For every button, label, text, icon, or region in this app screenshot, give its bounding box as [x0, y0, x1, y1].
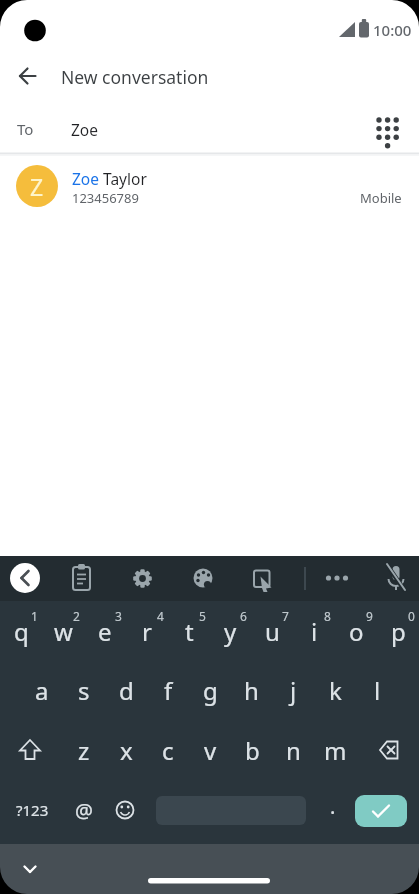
staticText: q	[14, 615, 29, 648]
staticText: m	[324, 734, 347, 767]
staticText: u	[265, 615, 280, 648]
staticText: l	[374, 674, 381, 707]
staticText: ?123	[16, 800, 49, 820]
staticText: 9	[366, 608, 373, 622]
staticText: y	[224, 615, 237, 648]
button[interactable]: j	[274, 673, 312, 707]
staticText: b	[245, 734, 260, 767]
staticText: p	[391, 615, 406, 648]
button[interactable]	[12, 61, 42, 91]
staticText: .	[330, 793, 336, 820]
staticText: f	[164, 674, 173, 707]
staticText: 123456789	[72, 189, 139, 207]
button[interactable]: z	[65, 733, 103, 767]
staticText: h	[244, 674, 259, 707]
button[interactable]: l	[358, 673, 396, 707]
button[interactable]	[156, 796, 306, 826]
staticText: 2	[73, 608, 80, 622]
staticText: 8	[324, 608, 331, 622]
button[interactable]	[66, 563, 96, 593]
button[interactable]	[14, 854, 46, 886]
button[interactable]: y	[211, 614, 249, 648]
button[interactable]: x	[107, 733, 145, 767]
staticText: d	[119, 674, 134, 707]
staticText: r	[142, 615, 152, 648]
staticText: c	[162, 734, 174, 767]
button[interactable]	[247, 563, 277, 593]
button[interactable]: a	[23, 673, 61, 707]
staticText: k	[329, 674, 342, 707]
button[interactable]: q	[2, 614, 40, 648]
staticText: 7	[282, 608, 289, 622]
button[interactable]	[322, 563, 352, 593]
button[interactable]: w	[44, 614, 82, 648]
button[interactable]: @	[69, 793, 99, 827]
staticText: 3	[115, 608, 122, 622]
staticText: 5	[199, 608, 206, 622]
staticText: 10:00	[373, 20, 412, 38]
button[interactable]: g	[191, 673, 229, 707]
button[interactable]: m	[316, 733, 354, 767]
staticText: i	[311, 615, 318, 648]
button[interactable]: u	[253, 614, 291, 648]
button[interactable]	[110, 796, 140, 826]
staticText: New conversation	[61, 65, 209, 89]
button[interactable]: e	[86, 614, 124, 648]
staticText: 1	[31, 608, 38, 622]
staticText: x	[120, 734, 133, 767]
staticText: a	[35, 674, 49, 707]
button[interactable]: r	[128, 614, 166, 648]
button[interactable]	[381, 563, 411, 593]
button[interactable]	[0, 160, 419, 212]
button[interactable]: k	[316, 673, 354, 707]
staticText: @	[75, 797, 93, 824]
staticText: Zoe	[71, 119, 98, 140]
button[interactable]	[12, 736, 48, 766]
staticText: To	[17, 119, 34, 139]
button[interactable]: b	[233, 733, 271, 767]
staticText: Taylor	[99, 168, 147, 189]
button[interactable]: t	[170, 614, 208, 648]
staticText: 4	[157, 608, 164, 622]
staticText: Zoe	[72, 168, 99, 189]
button[interactable]: n	[274, 733, 312, 767]
button[interactable]: s	[65, 673, 103, 707]
staticText: 0	[408, 608, 415, 622]
staticText: Z	[30, 171, 44, 202]
staticText: n	[286, 734, 301, 767]
button[interactable]: h	[232, 673, 270, 707]
button[interactable]: v	[191, 733, 229, 767]
staticText: z	[78, 734, 90, 767]
staticText: j	[290, 674, 297, 707]
button[interactable]: c	[149, 733, 187, 767]
staticText: g	[203, 674, 218, 707]
button[interactable]: d	[107, 673, 145, 707]
button[interactable]	[188, 563, 218, 593]
button[interactable]	[128, 563, 158, 593]
button[interactable]: o	[337, 614, 375, 648]
staticText: w	[54, 615, 73, 648]
button[interactable]	[370, 112, 406, 148]
staticText: s	[78, 674, 90, 707]
button[interactable]	[10, 563, 40, 593]
button[interactable]: p	[379, 614, 417, 648]
staticText: v	[204, 734, 217, 767]
button[interactable]	[370, 736, 406, 766]
button[interactable]: f	[149, 673, 187, 707]
staticText: 6	[240, 608, 247, 622]
button[interactable]: .	[322, 788, 344, 824]
button[interactable]: ?123	[9, 796, 55, 824]
button[interactable]	[355, 795, 407, 827]
staticText: e	[98, 615, 112, 648]
staticText: t	[185, 615, 194, 648]
button[interactable]: i	[295, 614, 333, 648]
staticText: o	[349, 615, 364, 648]
staticText: Mobile	[360, 189, 402, 207]
